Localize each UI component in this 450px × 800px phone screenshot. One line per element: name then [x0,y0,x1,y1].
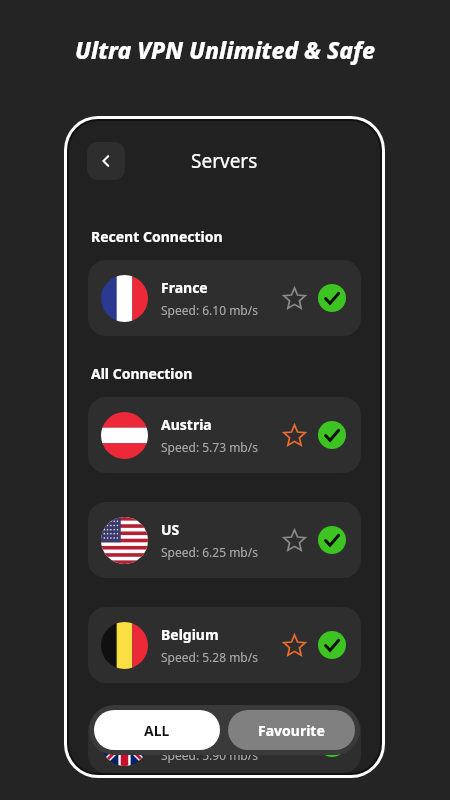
staticText: All Connection [91,364,193,383]
button[interactable]: Favourite [228,710,355,750]
button[interactable]: US [88,502,361,578]
button[interactable]: Favourite [277,281,311,315]
button[interactable]: Back [87,142,125,180]
staticText: US [161,520,180,539]
staticText: ALL [144,721,170,740]
button[interactable]: Connected [315,281,349,315]
staticText: Favourite [258,721,325,740]
button[interactable]: Connected [315,523,349,557]
button[interactable]: Favourite [277,523,311,557]
button[interactable]: UK [88,712,361,773]
button[interactable]: Connected [315,628,349,662]
button[interactable]: Favourite [277,418,311,452]
button[interactable]: Connected [315,418,349,452]
staticText: Speed: 5.28 mb/s [161,649,258,665]
button[interactable]: Favourite [277,628,311,662]
button[interactable]: Belgium [88,607,361,683]
staticText: Austria [161,415,212,434]
staticText: Speed: 6.25 mb/s [161,544,258,560]
staticText: France [161,278,208,297]
staticText: Speed: 5.90 mb/s [161,747,258,763]
staticText: UK [161,723,181,742]
button[interactable]: Favourite [277,726,311,760]
staticText: Speed: 6.10 mb/s [161,302,258,318]
button[interactable]: Connected [315,726,349,760]
staticText: Recent Connection [91,227,223,246]
button[interactable]: Austria [88,397,361,473]
button[interactable]: France [88,260,361,336]
staticText: Speed: 5.73 mb/s [161,439,258,455]
staticText: Ultra VPN Unlimited & Safe [75,34,376,65]
button[interactable]: ALL [94,710,220,750]
staticText: Belgium [161,625,219,644]
staticText: Servers [191,148,258,174]
